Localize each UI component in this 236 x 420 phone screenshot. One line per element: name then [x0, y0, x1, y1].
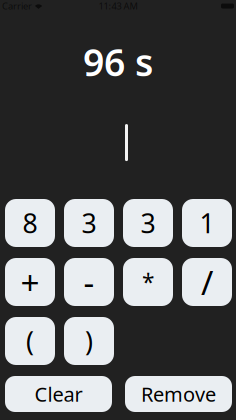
button[interactable]: *: [123, 258, 173, 306]
staticText: -: [83, 260, 94, 304]
button[interactable]: /: [182, 258, 232, 306]
button[interactable]: 8: [5, 199, 55, 247]
button[interactable]: 3: [64, 199, 114, 247]
staticText: *: [142, 267, 154, 297]
button[interactable]: 1: [182, 199, 232, 247]
button[interactable]: Expression field: [0, 125, 236, 161]
staticText: 3: [81, 205, 96, 241]
staticText: Carrier: [2, 0, 32, 12]
staticText: 3: [140, 205, 155, 241]
staticText: /: [201, 260, 213, 304]
button[interactable]: +: [5, 258, 55, 306]
staticText: Remove: [141, 381, 216, 407]
staticText: Clear: [34, 381, 82, 407]
button[interactable]: Remove: [125, 376, 232, 412]
staticText: 1: [199, 205, 214, 241]
staticText: (: [26, 323, 34, 359]
staticText: 11:43 AM: [98, 0, 137, 12]
button[interactable]: (: [5, 317, 55, 365]
staticText: ): [85, 323, 93, 359]
button[interactable]: ): [64, 317, 114, 365]
button[interactable]: Clear: [5, 376, 112, 412]
staticText: 96 s: [83, 37, 153, 87]
button[interactable]: 3: [123, 199, 173, 247]
staticText: 8: [22, 205, 37, 241]
button[interactable]: -: [64, 258, 114, 306]
staticText: +: [20, 260, 39, 304]
